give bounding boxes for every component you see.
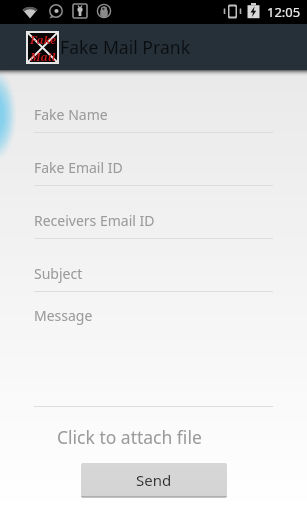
staticText: Fake Name — [34, 105, 108, 124]
button[interactable]: Fake Name — [34, 94, 273, 132]
staticText: Receivers Email ID — [34, 211, 155, 230]
staticText: Mail — [30, 49, 56, 64]
staticText: Fake Mail Prank — [60, 35, 191, 59]
staticText: Send — [136, 470, 172, 490]
staticText: Subject — [34, 264, 83, 283]
button[interactable]: Send — [81, 463, 227, 498]
staticText: Fake — [30, 32, 56, 47]
button[interactable]: Fake Email ID — [34, 147, 273, 185]
button[interactable]: Receivers Email ID — [34, 200, 273, 238]
staticText: Fake Email ID — [34, 158, 123, 177]
staticText: Click to attach file — [57, 425, 202, 449]
button[interactable]: Message — [34, 306, 273, 406]
button[interactable]: Subject — [34, 253, 273, 291]
staticText: Message — [34, 306, 93, 325]
staticText: 12:05 — [267, 3, 301, 21]
button[interactable]: Click to attach file — [0, 421, 307, 451]
